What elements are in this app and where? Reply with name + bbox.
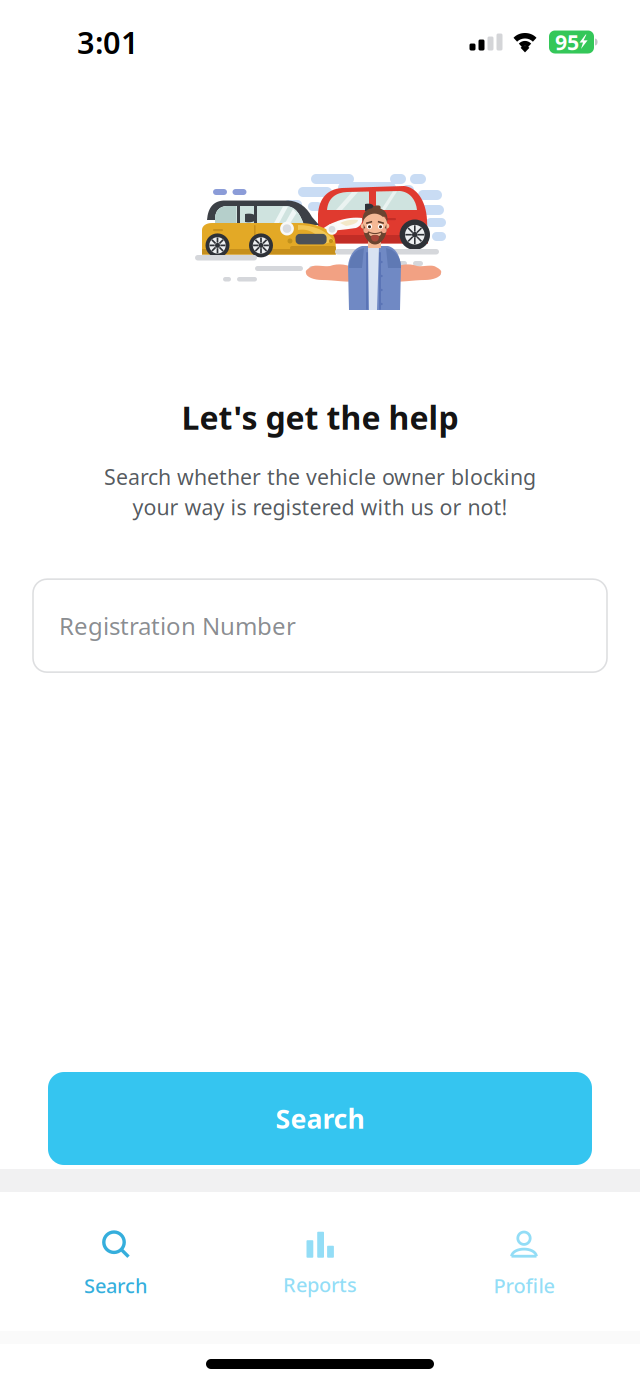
staticText: 95 — [555, 28, 579, 56]
staticText: Search — [84, 1272, 148, 1299]
staticText: Profile — [493, 1272, 554, 1299]
staticText: Search whether the vehicle owner blockin… — [104, 462, 536, 491]
staticText: Search — [275, 1101, 364, 1136]
staticText: your way is registered with us or not! — [132, 493, 507, 521]
button[interactable]: Search — [14, 1197, 218, 1326]
button[interactable]: Search — [0, 1069, 640, 1165]
staticText: 3:01 — [77, 22, 139, 62]
button[interactable]: Reports — [218, 1198, 422, 1325]
staticText: Reports — [283, 1271, 357, 1298]
button[interactable]: Profile — [422, 1197, 626, 1326]
staticText: Let's get the help — [181, 396, 458, 438]
button[interactable]: Registration Number — [0, 579, 640, 672]
staticText: Registration Number — [59, 610, 296, 642]
